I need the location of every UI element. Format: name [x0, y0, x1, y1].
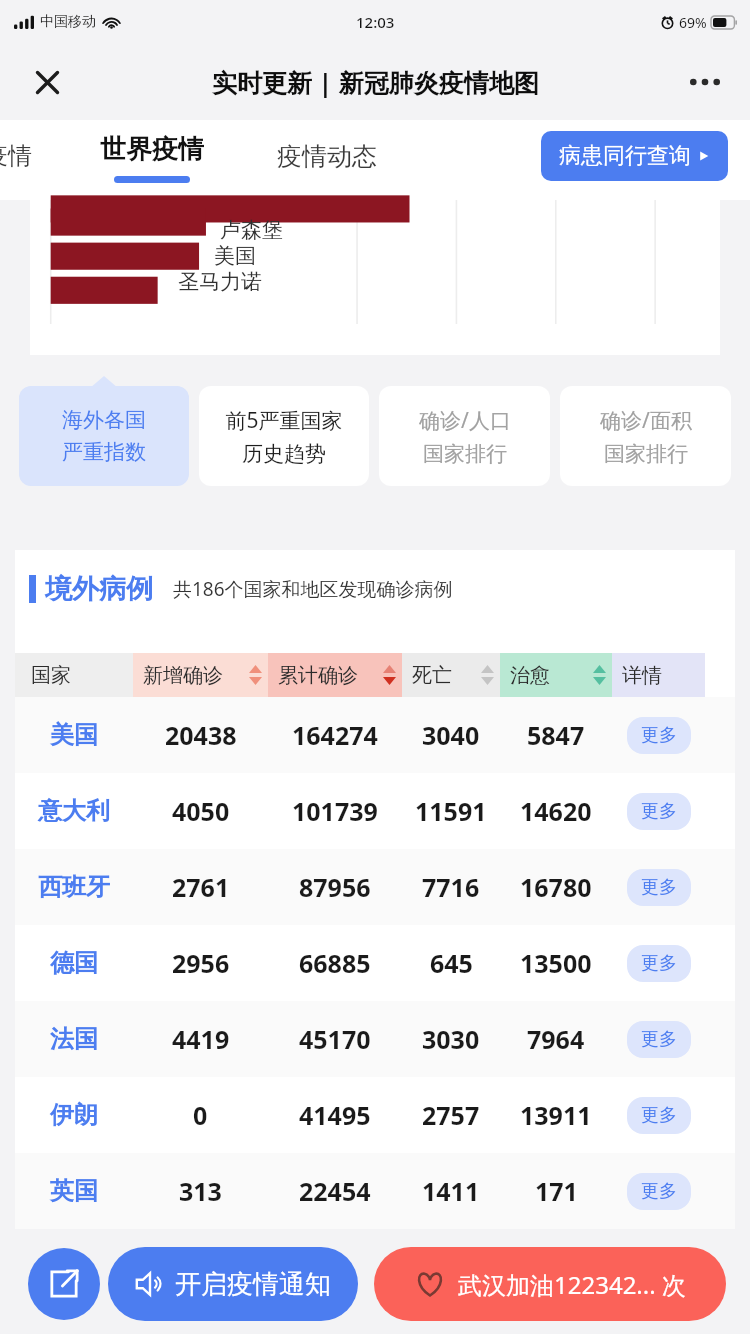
staticText: 7716 [422, 870, 480, 904]
button[interactable]: Share [28, 1248, 100, 1320]
button[interactable]: 更多 [627, 793, 691, 830]
button[interactable]: 确诊/人口 [379, 386, 550, 486]
staticText: 海外各国 [62, 407, 146, 433]
staticText: 中国移动 [40, 13, 96, 31]
staticText: 伊朗 [50, 1100, 98, 1130]
button[interactable]: 疫情 [0, 141, 32, 171]
button[interactable]: 意大利 [15, 773, 735, 849]
staticText: 西班牙 [38, 872, 110, 902]
staticText: 更多 [641, 800, 677, 823]
staticText: 美国 [50, 720, 98, 750]
button[interactable]: 确诊/面积 [560, 386, 731, 486]
staticText: 历史趋势 [242, 441, 326, 467]
staticText: 101739 [292, 794, 378, 828]
staticText: 更多 [641, 724, 677, 747]
staticText: 世界疫情 [100, 133, 204, 166]
staticText: 11591 [415, 794, 487, 828]
staticText: 新增确诊 [143, 663, 223, 688]
staticText: 英国 [50, 1176, 98, 1206]
staticText: 前5严重国家 [225, 406, 343, 435]
staticText: 171 [535, 1174, 578, 1208]
staticText: 详情 [622, 663, 662, 688]
staticText: 13911 [520, 1098, 592, 1132]
staticText: 1411 [422, 1174, 480, 1208]
button[interactable]: 世界疫情 [100, 133, 204, 166]
button[interactable]: 美国 [15, 697, 735, 773]
staticText: 死亡 [412, 663, 452, 688]
button[interactable]: 治愈 [500, 653, 612, 697]
staticText: 确诊/人口 [419, 406, 511, 435]
staticText: 7964 [527, 1022, 585, 1056]
staticText: 累计确诊 [278, 663, 358, 688]
button[interactable]: 更多 [627, 717, 691, 754]
staticText: 164274 [292, 718, 378, 752]
button[interactable]: 德国 [15, 925, 735, 1001]
button[interactable]: 武汉加油122342... 次 [374, 1247, 726, 1321]
button[interactable]: 国家 [15, 653, 133, 697]
staticText: 国家 [31, 663, 71, 688]
staticText: 5847 [527, 718, 585, 752]
button[interactable]: 海外各国 [19, 386, 189, 486]
staticText: 卢森堡 [220, 217, 283, 243]
staticText: 圣马力诺 [178, 269, 262, 295]
button[interactable]: 更多 [627, 1021, 691, 1058]
staticText: 13500 [520, 946, 592, 980]
staticText: 治愈 [510, 663, 550, 688]
staticText: 法国 [50, 1024, 98, 1054]
button[interactable]: 更多 [627, 1173, 691, 1210]
staticText: 境外病例 [45, 572, 153, 606]
staticText: 4419 [172, 1022, 230, 1056]
staticText: 武汉加油122342... 次 [458, 1268, 686, 1301]
staticText: 更多 [641, 1028, 677, 1051]
button[interactable]: 伊朗 [15, 1077, 735, 1153]
staticText: 更多 [641, 952, 677, 975]
staticText: 意大利 [38, 796, 110, 826]
staticText: 更多 [641, 1104, 677, 1127]
button[interactable]: 累计确诊 [268, 653, 402, 697]
staticText: 69% [679, 13, 707, 32]
button[interactable]: 西班牙 [15, 849, 735, 925]
staticText: 20438 [165, 718, 237, 752]
button[interactable]: 前5严重国家 [199, 386, 369, 486]
staticText: 66885 [299, 946, 371, 980]
button[interactable]: 死亡 [402, 653, 500, 697]
staticText: 更多 [641, 876, 677, 899]
button[interactable]: Close [24, 59, 70, 105]
button[interactable]: More options [682, 59, 728, 105]
staticText: 0 [193, 1098, 208, 1132]
button[interactable]: 更多 [627, 945, 691, 982]
staticText: 2956 [172, 946, 230, 980]
staticText: 41495 [299, 1098, 371, 1132]
button[interactable]: 详情 [612, 653, 705, 697]
staticText: 国家排行 [423, 441, 507, 467]
staticText: 14620 [520, 794, 592, 828]
staticText: 严重指数 [62, 439, 146, 465]
button[interactable]: 更多 [627, 869, 691, 906]
staticText: 645 [430, 946, 473, 980]
staticText: 2757 [422, 1098, 480, 1132]
staticText: 德国 [50, 948, 98, 978]
staticText: 国家排行 [604, 441, 688, 467]
staticText: 开启疫情通知 [175, 1268, 331, 1301]
staticText: 实时更新 | 新冠肺炎疫情地图 [212, 65, 539, 99]
button[interactable]: 新增确诊 [133, 653, 268, 697]
button[interactable]: 病患同行查询 [541, 131, 728, 181]
staticText: 313 [179, 1174, 222, 1208]
staticText: 2761 [172, 870, 230, 904]
button[interactable]: 法国 [15, 1001, 735, 1077]
staticText: 12:03 [356, 12, 395, 32]
staticText: 87956 [299, 870, 371, 904]
staticText: 3030 [422, 1022, 480, 1056]
button[interactable]: 更多 [627, 1097, 691, 1134]
staticText: 4050 [172, 794, 230, 828]
button[interactable]: 英国 [15, 1153, 735, 1229]
button[interactable]: 疫情动态 [277, 141, 377, 172]
staticText: 16780 [520, 870, 592, 904]
staticText: 3040 [422, 718, 480, 752]
staticText: 更多 [641, 1180, 677, 1203]
staticText: 45170 [299, 1022, 371, 1056]
staticText: 共186个国家和地区发现确诊病例 [173, 576, 453, 602]
button[interactable]: 开启疫情通知 [108, 1247, 358, 1321]
staticText: 病患同行查询 [559, 142, 691, 170]
staticText: 22454 [299, 1174, 371, 1208]
